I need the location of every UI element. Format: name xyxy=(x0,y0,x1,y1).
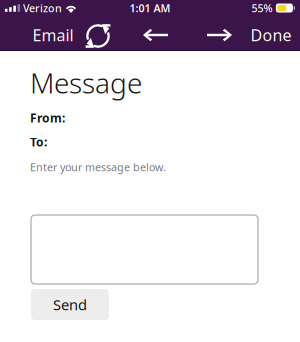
staticText: To: xyxy=(30,134,47,150)
staticText: Message xyxy=(30,64,142,101)
staticText: Enter your message below. xyxy=(30,160,166,174)
button[interactable]: Back xyxy=(139,18,172,52)
button[interactable]: Send xyxy=(31,289,109,320)
staticText: Verizon xyxy=(23,1,62,15)
button[interactable]: Refresh xyxy=(83,19,113,53)
staticText: From: xyxy=(30,110,65,126)
staticText: Email xyxy=(32,24,73,46)
button[interactable]: Done xyxy=(249,18,293,52)
button[interactable]: Forward xyxy=(203,18,236,52)
staticText: Done xyxy=(250,24,291,46)
staticText: Send xyxy=(53,295,87,314)
button[interactable]: Email xyxy=(31,18,75,52)
staticText: 55% xyxy=(251,1,272,15)
staticText: 1:01 AM xyxy=(129,1,170,15)
